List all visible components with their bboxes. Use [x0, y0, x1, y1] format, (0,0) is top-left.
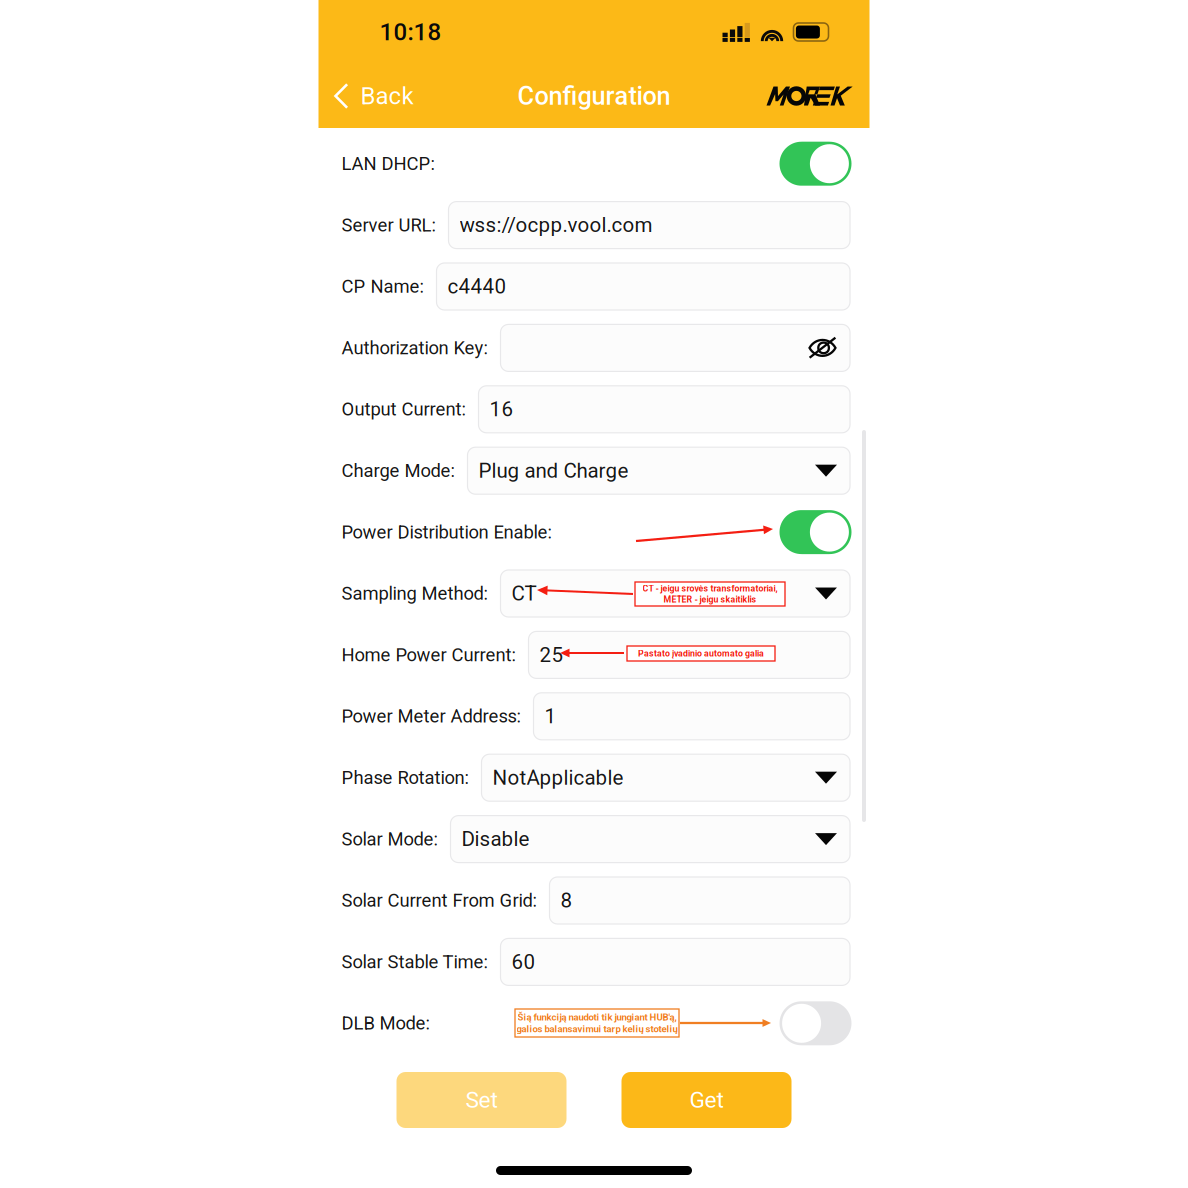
button[interactable]: c4440	[436, 263, 850, 310]
staticText: Plug and Charge	[478, 459, 628, 483]
staticText: Pastato įvadinio automato galia	[638, 648, 764, 659]
staticText: Solar Stable Time:	[341, 951, 487, 973]
staticText: LAN DHCP:	[341, 153, 434, 174]
staticText: Power Distribution Enable:	[341, 521, 551, 543]
staticText: Set	[465, 1087, 497, 1113]
staticText: 10:18	[379, 18, 441, 46]
staticText: Home Power Current:	[341, 644, 515, 666]
staticText: 60	[511, 950, 535, 974]
staticText: Get	[689, 1087, 723, 1113]
staticText: Authorization Key:	[341, 337, 487, 359]
button[interactable]: 16	[478, 386, 850, 433]
button[interactable]: Back	[318, 67, 425, 125]
button[interactable]: Set	[396, 1072, 566, 1128]
staticText: Configuration	[517, 81, 670, 111]
staticText: 25	[539, 643, 563, 667]
staticText: Back	[360, 82, 413, 110]
button[interactable]: Plug and Charge	[467, 447, 850, 494]
staticText: METER - jeigu skaitiklis	[663, 594, 756, 604]
staticText: Output Current:	[341, 398, 465, 420]
button[interactable]: 1	[533, 693, 850, 740]
staticText: Charge Mode:	[341, 460, 454, 481]
button[interactable]: wss://ocpp.vool.com	[448, 202, 850, 249]
staticText: DLB Mode:	[341, 1012, 429, 1034]
staticText: Server URL:	[341, 214, 435, 236]
button[interactable]: Disable	[450, 816, 850, 863]
staticText: Solar Mode:	[341, 828, 437, 850]
staticText: galios balansavimui tarp kelių stotelių	[516, 1023, 677, 1034]
staticText: CP Name:	[341, 276, 423, 297]
staticText: Power Meter Address:	[341, 705, 520, 727]
staticText: wss://ocpp.vool.com	[459, 213, 652, 237]
staticText: 16	[489, 397, 513, 421]
button[interactable]: Show authorization key	[808, 337, 837, 359]
button[interactable]: DLB Mode: off	[779, 1001, 850, 1045]
staticText: Šią funkciją naudoti tik jungiant HUB'ą,	[517, 1011, 676, 1023]
button[interactable]: 25	[528, 631, 850, 678]
staticText: CT - jeigu srovės transformatoriai,	[642, 583, 777, 594]
staticText: c4440	[447, 274, 506, 299]
staticText: Solar Current From Grid:	[341, 890, 536, 911]
button[interactable]: CT	[500, 570, 850, 617]
staticText: Sampling Method:	[341, 583, 487, 604]
button[interactable]: Power Distribution Enable: on	[779, 510, 850, 554]
staticText: NotApplicable	[492, 766, 623, 790]
staticText: Disable	[461, 827, 529, 851]
button[interactable]: 8	[549, 877, 850, 924]
button[interactable]: LAN DHCP: on	[779, 142, 850, 186]
button[interactable]: 60	[500, 938, 850, 985]
button[interactable]	[500, 324, 850, 371]
button[interactable]: NotApplicable	[481, 754, 850, 801]
staticText: Phase Rotation:	[341, 767, 468, 788]
staticText: 8	[560, 888, 572, 913]
staticText: CT	[511, 581, 536, 606]
staticText: 1	[544, 704, 556, 728]
button[interactable]: Get	[621, 1072, 791, 1128]
